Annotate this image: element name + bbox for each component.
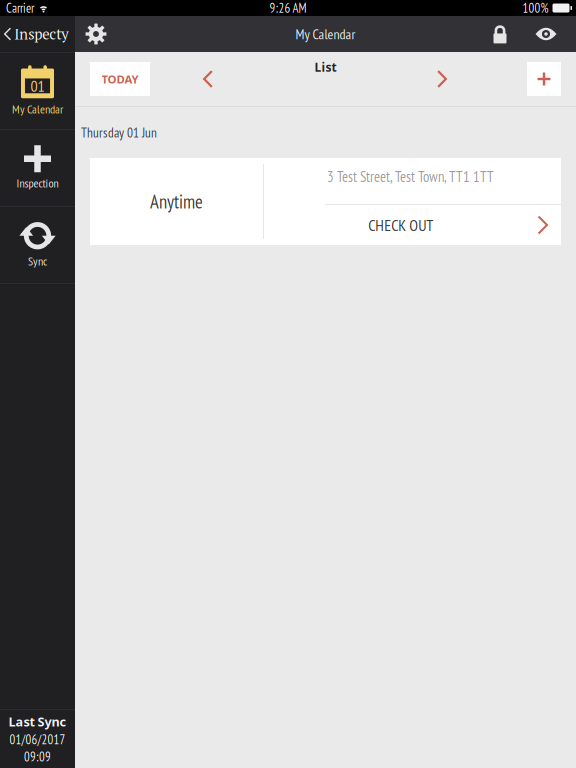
staticText: 9:26 AM	[269, 0, 306, 16]
staticText: My Calendar	[12, 101, 63, 117]
button[interactable]: Add appointment	[527, 62, 561, 96]
staticText: Thursday 01 Jun	[81, 124, 157, 141]
button[interactable]: Preview	[523, 16, 569, 52]
staticText: 100%	[522, 0, 548, 16]
staticText: 01/06/2017	[9, 731, 65, 748]
button[interactable]: Previous day	[190, 59, 226, 99]
staticText: 09:09	[24, 749, 51, 765]
staticText: Carrier	[6, 0, 34, 16]
staticText: Last Sync	[8, 713, 66, 730]
staticText: Inspecty	[14, 24, 68, 44]
button[interactable]: TODAY	[90, 62, 150, 96]
staticText: Inspection	[16, 175, 58, 191]
staticText: My Calendar	[295, 25, 355, 43]
button[interactable]: 01	[0, 53, 75, 129]
staticText: List	[314, 59, 336, 75]
button[interactable]: Sync	[0, 207, 75, 283]
staticText: Sync	[28, 253, 47, 269]
staticText: Anytime	[150, 189, 203, 214]
button[interactable]: Anytime	[90, 158, 561, 245]
button[interactable]: Next day	[424, 59, 460, 99]
staticText: 3 Test Street, Test Town, TT1 1TT	[327, 167, 494, 186]
button[interactable]: Settings	[75, 16, 117, 52]
staticText: 01	[30, 76, 44, 96]
staticText: TODAY	[101, 71, 138, 87]
button[interactable]: Inspecty	[0, 16, 75, 52]
button[interactable]: Lock	[477, 16, 523, 52]
staticText: CHECK OUT	[368, 215, 433, 235]
button[interactable]: Inspection	[0, 130, 75, 206]
